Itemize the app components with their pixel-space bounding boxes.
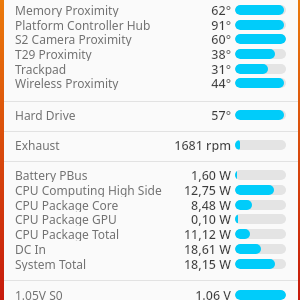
button[interactable]: 1.05V S0	[0, 287, 300, 300]
staticText: 57°	[211, 107, 231, 122]
staticText: Exhaust	[15, 137, 60, 152]
staticText: 12,75 W	[183, 182, 231, 197]
button[interactable]: Platform Controller Hub	[0, 17, 300, 32]
staticText: DC In	[15, 241, 46, 256]
staticText: S2 Camera Proximity	[15, 31, 132, 46]
staticText: CPU Computing High Side	[15, 182, 162, 197]
staticText: Memory Proximity	[15, 2, 119, 17]
staticText: 44°	[211, 75, 231, 90]
staticText: 31°	[211, 61, 231, 76]
staticText: 62°	[211, 2, 231, 17]
button[interactable]: Exhaust	[0, 137, 300, 152]
button[interactable]: Wireless Proximity	[0, 75, 300, 90]
staticText: 38°	[211, 46, 231, 61]
staticText: Hard Drive	[15, 107, 76, 122]
staticText: Platform Controller Hub	[15, 17, 151, 32]
button[interactable]: CPU Computing High Side	[0, 182, 300, 197]
staticText: 91°	[211, 17, 231, 32]
staticText: 1.05V S0	[15, 287, 63, 300]
button[interactable]: Battery PBus	[0, 167, 300, 182]
staticText: CPU Package Total	[15, 226, 120, 241]
staticText: System Total	[15, 256, 87, 271]
button[interactable]: Hard Drive	[0, 107, 300, 122]
staticText: 0,10 W	[191, 211, 231, 226]
staticText: Wireless Proximity	[15, 75, 119, 90]
staticText: Trackpad	[15, 61, 67, 76]
button[interactable]: Memory Proximity	[0, 2, 300, 17]
button[interactable]: CPU Package GPU	[0, 211, 300, 226]
staticText: 8,48 W	[191, 197, 231, 212]
staticText: 1.06 V	[195, 287, 231, 300]
staticText: 11,12 W	[183, 226, 231, 241]
staticText: 18,15 W	[183, 256, 231, 271]
button[interactable]: CPU Package Core	[0, 197, 300, 212]
button[interactable]: Trackpad	[0, 61, 300, 76]
staticText: 60°	[211, 31, 231, 46]
staticText: T29 Proximity	[15, 46, 92, 61]
staticText: CPU Package GPU	[15, 211, 117, 226]
staticText: 1681 rpm	[174, 137, 231, 152]
button[interactable]: CPU Package Total	[0, 226, 300, 241]
button[interactable]: DC In	[0, 241, 300, 256]
button[interactable]: System Total	[0, 256, 300, 271]
staticText: CPU Package Core	[15, 197, 119, 212]
button[interactable]: T29 Proximity	[0, 46, 300, 61]
staticText: Battery PBus	[15, 167, 88, 182]
staticText: 18,61 W	[183, 241, 231, 256]
staticText: 1,60 W	[191, 167, 231, 182]
button[interactable]: S2 Camera Proximity	[0, 31, 300, 46]
